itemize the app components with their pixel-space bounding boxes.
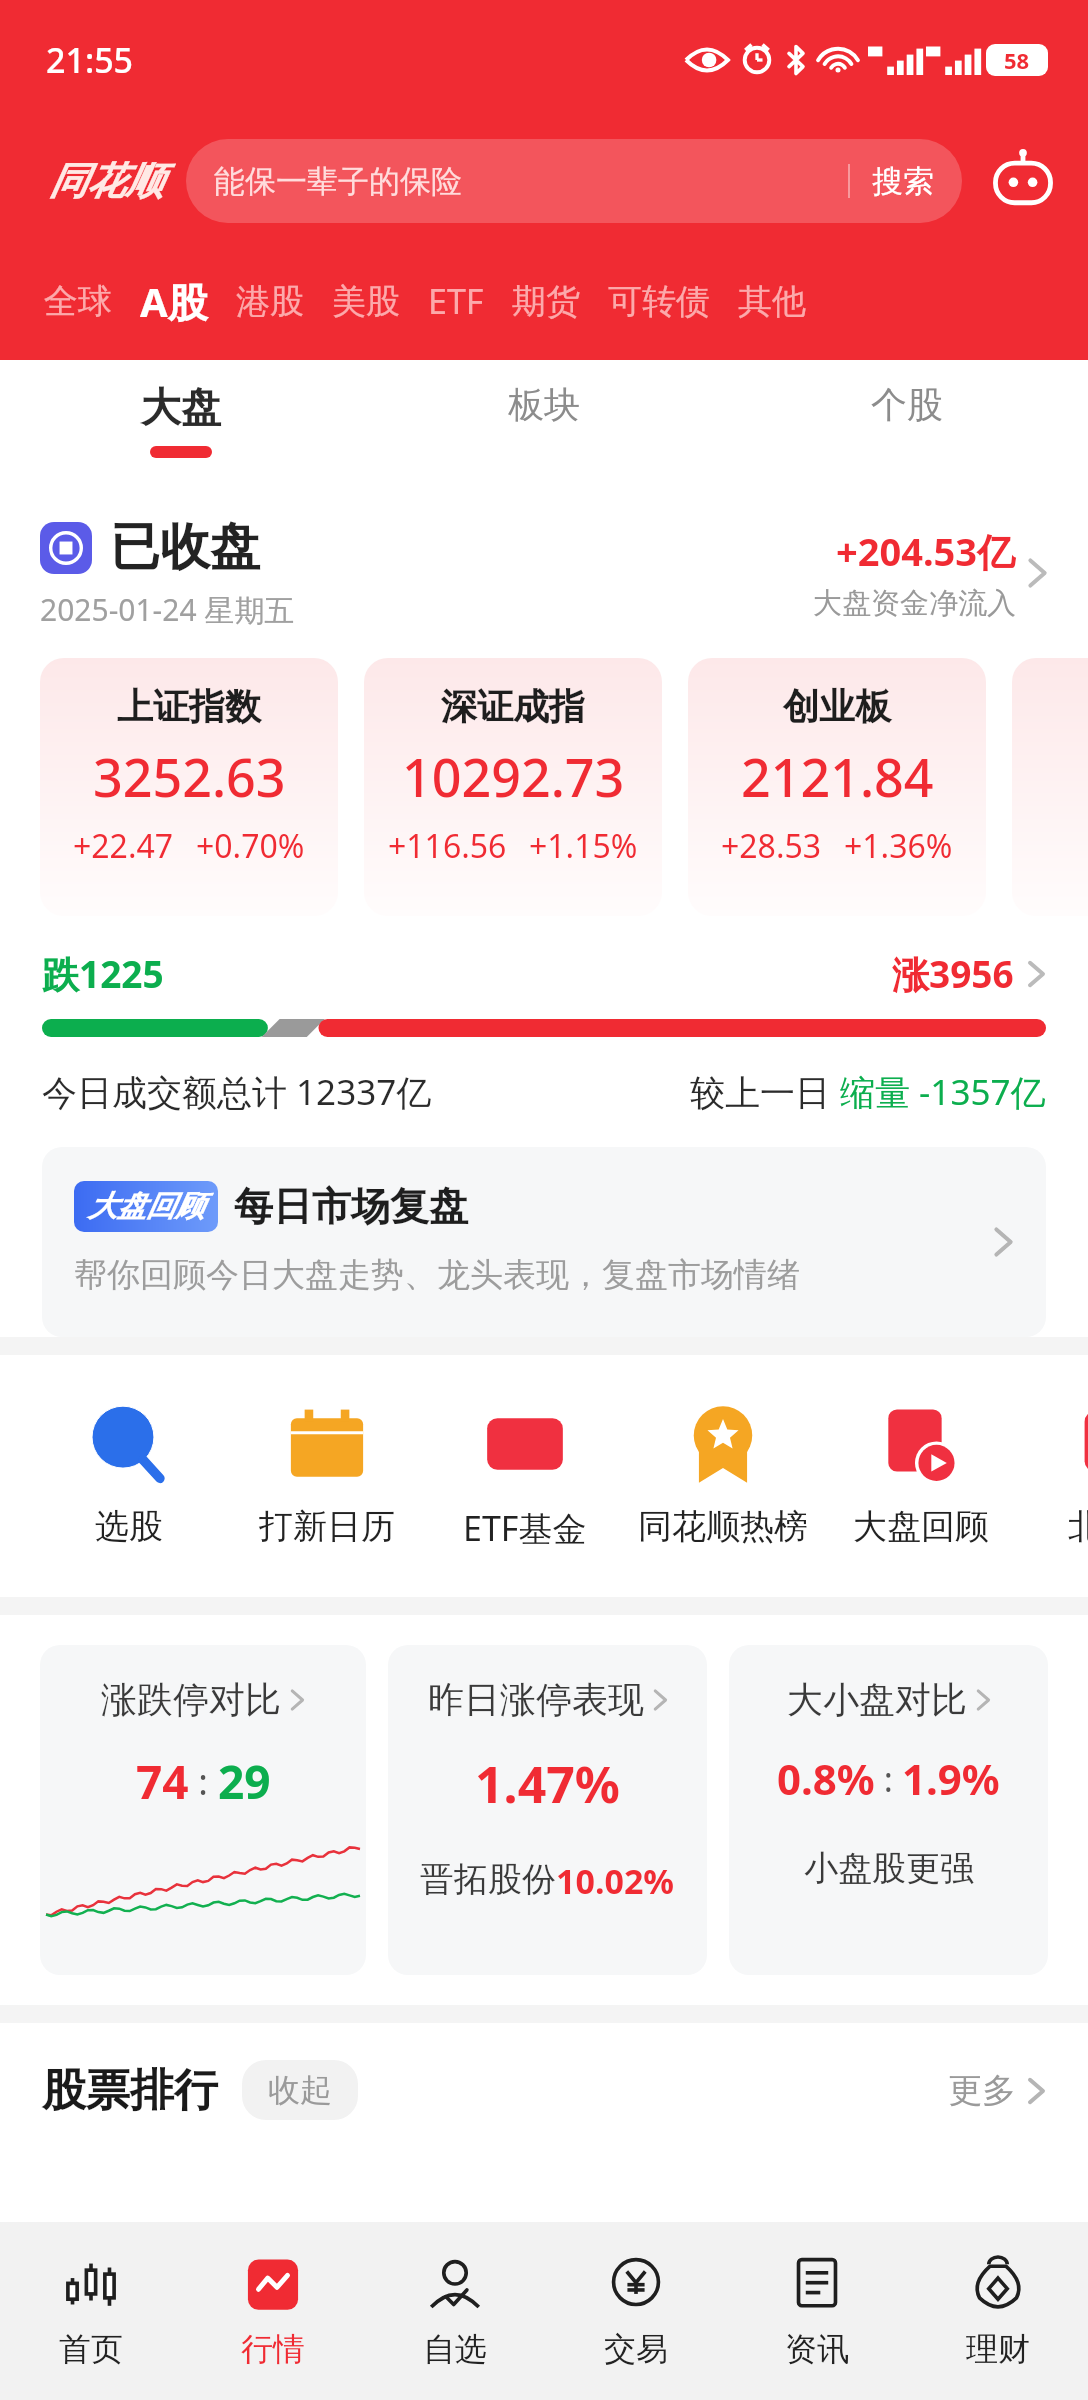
staticText: +0.70% <box>196 824 305 868</box>
staticText: ETF基金 <box>463 1505 587 1551</box>
staticText: 21:55 <box>46 37 134 83</box>
staticText: 自选 <box>423 2329 487 2369</box>
button[interactable]: 大盘回顾 <box>42 1147 1046 1337</box>
staticText: 每日市场复盘 <box>234 1182 468 1231</box>
button[interactable]: ETF基金 <box>426 1401 624 1551</box>
button[interactable]: 上证指数 <box>40 658 338 916</box>
staticText: 收起 <box>268 2070 332 2110</box>
staticText: 选股 <box>95 1505 163 1548</box>
staticText: 小盘股更强 <box>804 1847 974 1890</box>
staticText: +22.47 <box>73 824 174 868</box>
staticText: 2121.84 <box>741 741 934 812</box>
staticText: +1.36% <box>844 824 953 868</box>
staticText: 个股 <box>871 382 943 427</box>
staticText: : <box>189 1757 218 1806</box>
staticText: 上证指数 <box>117 684 261 729</box>
staticText: 昨日涨停表现 <box>428 1677 644 1722</box>
staticText: 涨3956 <box>892 948 1014 999</box>
staticText: 3252.63 <box>93 741 286 812</box>
staticText: 搜索 <box>872 162 934 201</box>
button[interactable]: 能保一辈子的保险 <box>186 139 962 223</box>
button[interactable]: 个股 <box>725 360 1088 488</box>
staticText: 58 <box>1004 45 1030 75</box>
staticText: : <box>875 1756 902 1802</box>
button[interactable]: 跌1225 <box>42 948 1046 999</box>
staticText: 2025-01-24 星期五 <box>40 589 295 630</box>
button[interactable]: 大盘 <box>0 360 362 488</box>
button[interactable]: 自选 <box>364 2222 545 2400</box>
button[interactable]: 板块 <box>362 360 725 488</box>
staticText: 大盘资金净流入 <box>813 585 1016 622</box>
staticText: 交易 <box>604 2329 668 2369</box>
button[interactable]: 北交所 <box>1020 1401 1088 1548</box>
button[interactable]: 全球 <box>30 270 126 333</box>
staticText: 股票排行 <box>42 2063 218 2118</box>
staticText: +204.53亿 <box>836 525 1016 577</box>
button[interactable]: 首页 <box>0 2222 182 2400</box>
button[interactable]: 打新日历 <box>228 1401 426 1548</box>
staticText: 大小盘对比 <box>787 1677 967 1722</box>
staticText: 行情 <box>241 2329 305 2369</box>
button[interactable]: 创业板 <box>688 658 986 916</box>
staticText: 大盘回顾 <box>853 1505 989 1548</box>
staticText: 帮你回顾今日大盘走势、龙头表现，复盘市场情绪 <box>74 1254 800 1296</box>
button[interactable]: 大小盘对比 <box>729 1645 1048 1975</box>
staticText: 板块 <box>508 382 580 427</box>
staticText: 涨跌停对比 <box>101 1677 281 1722</box>
staticText: 74 <box>136 1750 189 1813</box>
button[interactable]: 同花顺热榜 <box>624 1401 822 1548</box>
staticText: +1.15% <box>529 824 638 868</box>
staticText: 其他 <box>738 280 806 323</box>
button[interactable]: 收起 <box>242 2060 358 2120</box>
button[interactable]: 资讯 <box>726 2222 907 2400</box>
button[interactable]: 已收盘 <box>40 488 1048 658</box>
button[interactable]: 大盘回顾 <box>822 1401 1020 1548</box>
button[interactable]: ETF <box>414 268 498 334</box>
staticText: 晋拓股份 <box>420 1858 556 1901</box>
staticText: 理财 <box>966 2329 1030 2369</box>
staticText: 大盘回顾 <box>88 1188 204 1225</box>
staticText: 全球 <box>44 280 112 323</box>
button[interactable]: 昨日涨停表现 <box>388 1645 707 1975</box>
staticText: 期货 <box>512 280 580 323</box>
button[interactable]: 港股 <box>222 270 318 333</box>
button[interactable]: 期货 <box>498 270 594 333</box>
staticText: 较上一日 <box>690 1068 840 1116</box>
staticText: +28.53 <box>721 824 822 868</box>
staticText: 可转债 <box>608 280 710 323</box>
staticText: 北交所 <box>1068 1505 1088 1548</box>
button[interactable]: 更多 <box>948 2069 1046 2112</box>
staticText: 港股 <box>236 280 304 323</box>
button[interactable]: 涨跌停对比 <box>40 1645 366 1975</box>
staticText: 1.47% <box>475 1750 620 1818</box>
staticText: 10292.73 <box>402 741 625 812</box>
button[interactable]: 可转债 <box>594 270 724 333</box>
staticText: 创业板 <box>783 684 891 729</box>
staticText: 今日成交额总计 12337亿 <box>42 1068 432 1116</box>
button[interactable]: 美股 <box>318 270 414 333</box>
staticText: 缩量 -1357亿 <box>840 1068 1046 1116</box>
staticText: 能保一辈子的保险 <box>214 162 848 201</box>
staticText: 深证成指 <box>441 684 585 729</box>
staticText: 大盘 <box>141 382 221 432</box>
button[interactable]: 行情 <box>182 2222 364 2400</box>
button[interactable]: 理财 <box>907 2222 1088 2400</box>
staticText: 同花顺热榜 <box>638 1505 808 1548</box>
staticText: +116.56 <box>388 824 507 868</box>
button[interactable]: 选股 <box>30 1401 228 1548</box>
staticText: 0.8% <box>777 1750 875 1807</box>
staticText: A股 <box>140 274 208 329</box>
staticText: 已收盘 <box>110 516 260 579</box>
staticText: 1.9% <box>902 1750 1000 1807</box>
button[interactable]: 北证50 <box>1012 658 1088 916</box>
staticText: 美股 <box>332 280 400 323</box>
staticText: 打新日历 <box>259 1505 395 1548</box>
button[interactable]: 深证成指 <box>364 658 662 916</box>
button[interactable]: 其他 <box>724 270 820 333</box>
staticText: 10.02% <box>556 1858 675 1904</box>
button[interactable]: A股 <box>126 264 222 339</box>
button[interactable]: Assistant <box>984 142 1062 220</box>
button[interactable]: 交易 <box>545 2222 726 2400</box>
staticText: 跌1225 <box>42 948 164 999</box>
staticText: 资讯 <box>785 2329 849 2369</box>
